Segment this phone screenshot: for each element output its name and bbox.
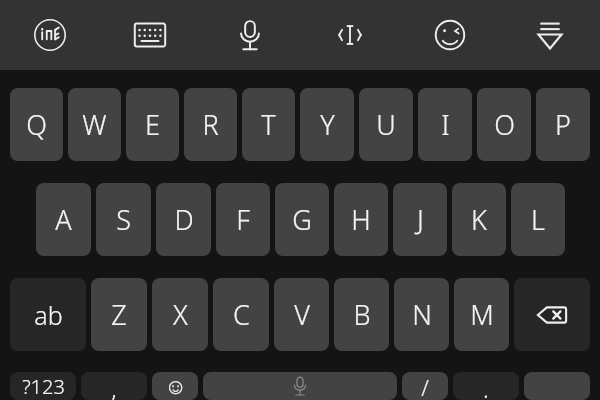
button[interactable]: U (359, 88, 413, 161)
button[interactable]: P (536, 88, 590, 161)
staticText: P (555, 106, 571, 143)
staticText: W (82, 106, 107, 143)
staticText: , (111, 372, 117, 400)
staticText: C (233, 296, 250, 333)
button[interactable]: V (274, 278, 329, 351)
button[interactable]: Hide keyboard (500, 0, 600, 70)
button[interactable]: Z (91, 278, 147, 351)
button[interactable]: ab (10, 278, 86, 351)
button[interactable]: R (184, 88, 237, 161)
button[interactable]: Q (10, 88, 63, 161)
staticText: B (353, 296, 371, 333)
staticText: F (236, 201, 250, 238)
button[interactable]: Keyboard layout (100, 0, 200, 70)
staticText: ☺ (164, 374, 187, 399)
staticText: X (173, 296, 188, 333)
button[interactable]: C (213, 278, 269, 351)
button[interactable]: Space (203, 372, 397, 400)
staticText: I (441, 106, 450, 143)
button[interactable]: Backspace (514, 278, 590, 351)
staticText: E (145, 106, 160, 143)
staticText: ab (34, 298, 63, 332)
staticText: O (494, 106, 515, 143)
staticText: G (292, 201, 312, 238)
button[interactable]: E (126, 88, 179, 161)
button[interactable]: L (511, 183, 565, 256)
staticText: S (116, 201, 131, 238)
button[interactable]: O (477, 88, 531, 161)
button[interactable]: T (242, 88, 295, 161)
button[interactable]: ?123 (10, 372, 76, 400)
staticText: D (174, 201, 194, 238)
staticText: Z (111, 296, 127, 333)
staticText: K (471, 201, 487, 238)
staticText: Y (320, 106, 335, 143)
button[interactable]: / (402, 372, 448, 400)
staticText: J (417, 201, 424, 238)
staticText: T (261, 106, 276, 143)
button[interactable]: A (36, 183, 91, 256)
button[interactable]: Move cursor (300, 0, 400, 70)
button[interactable]: G (275, 183, 329, 256)
staticText: R (202, 106, 219, 143)
button[interactable]: M (454, 278, 509, 351)
button[interactable]: Input method (0, 0, 100, 70)
staticText: A (55, 201, 72, 238)
staticText: . (483, 372, 489, 400)
button[interactable]: N (394, 278, 449, 351)
button[interactable]: W (68, 88, 121, 161)
button[interactable]: H (334, 183, 388, 256)
staticText: L (531, 201, 545, 238)
button[interactable]: Emoji (400, 0, 500, 70)
button[interactable]: Voice input (200, 0, 300, 70)
button[interactable]: I (418, 88, 472, 161)
staticText: M (470, 296, 494, 333)
staticText: / (421, 372, 429, 400)
button[interactable]: K (452, 183, 506, 256)
button[interactable]: X (152, 278, 208, 351)
staticText: H (351, 201, 371, 238)
button[interactable]: . (453, 372, 519, 400)
button[interactable]: J (393, 183, 447, 256)
staticText: N (412, 296, 432, 333)
staticText: U (376, 106, 396, 143)
button[interactable]: F (216, 183, 270, 256)
button[interactable]: S (96, 183, 151, 256)
button[interactable]: D (156, 183, 211, 256)
button[interactable]: B (334, 278, 389, 351)
staticText: V (294, 296, 310, 333)
button[interactable]: , (81, 372, 147, 400)
button[interactable]: ☺ (152, 372, 198, 400)
staticText: Q (26, 106, 47, 143)
button[interactable]: Y (300, 88, 354, 161)
button[interactable]: Enter (524, 372, 590, 400)
staticText: ?123 (22, 373, 65, 400)
